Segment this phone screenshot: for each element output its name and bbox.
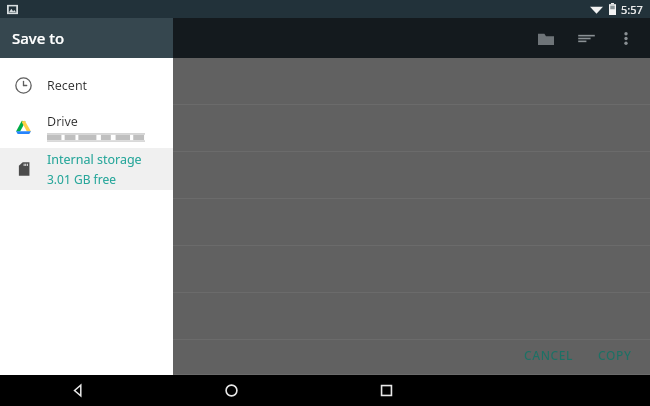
button[interactable]: COPY [588, 341, 642, 369]
staticText: CANCEL [524, 347, 574, 363]
staticText: Drive [47, 113, 78, 130]
staticText: 3.01 GB free [47, 171, 116, 187]
button[interactable]: Home [154, 375, 309, 406]
button[interactable]: New folder [526, 18, 566, 58]
button[interactable]: Sort [566, 18, 606, 58]
button[interactable]: More options [606, 18, 646, 58]
button[interactable]: Back [0, 375, 154, 406]
button[interactable]: Drive [0, 106, 173, 148]
staticText: Internal storage [47, 151, 142, 168]
button[interactable] [173, 340, 650, 375]
button[interactable]: Internal storage [0, 148, 173, 190]
button[interactable]: CANCEL [514, 341, 584, 369]
staticText: Recent [47, 77, 88, 94]
button[interactable]: Recents [309, 375, 464, 406]
staticText: Save to [12, 28, 65, 48]
button[interactable]: Recent [0, 64, 173, 106]
staticText: COPY [598, 347, 632, 363]
staticText: 5:57 [621, 2, 643, 17]
